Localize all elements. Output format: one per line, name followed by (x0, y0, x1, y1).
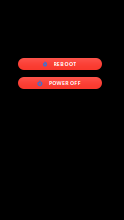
staticText: REBOOT (53, 60, 76, 68)
button[interactable]: REBOOT (18, 58, 102, 70)
staticText: POWER OFF (49, 79, 81, 87)
button[interactable]: POWER OFF (18, 77, 102, 89)
